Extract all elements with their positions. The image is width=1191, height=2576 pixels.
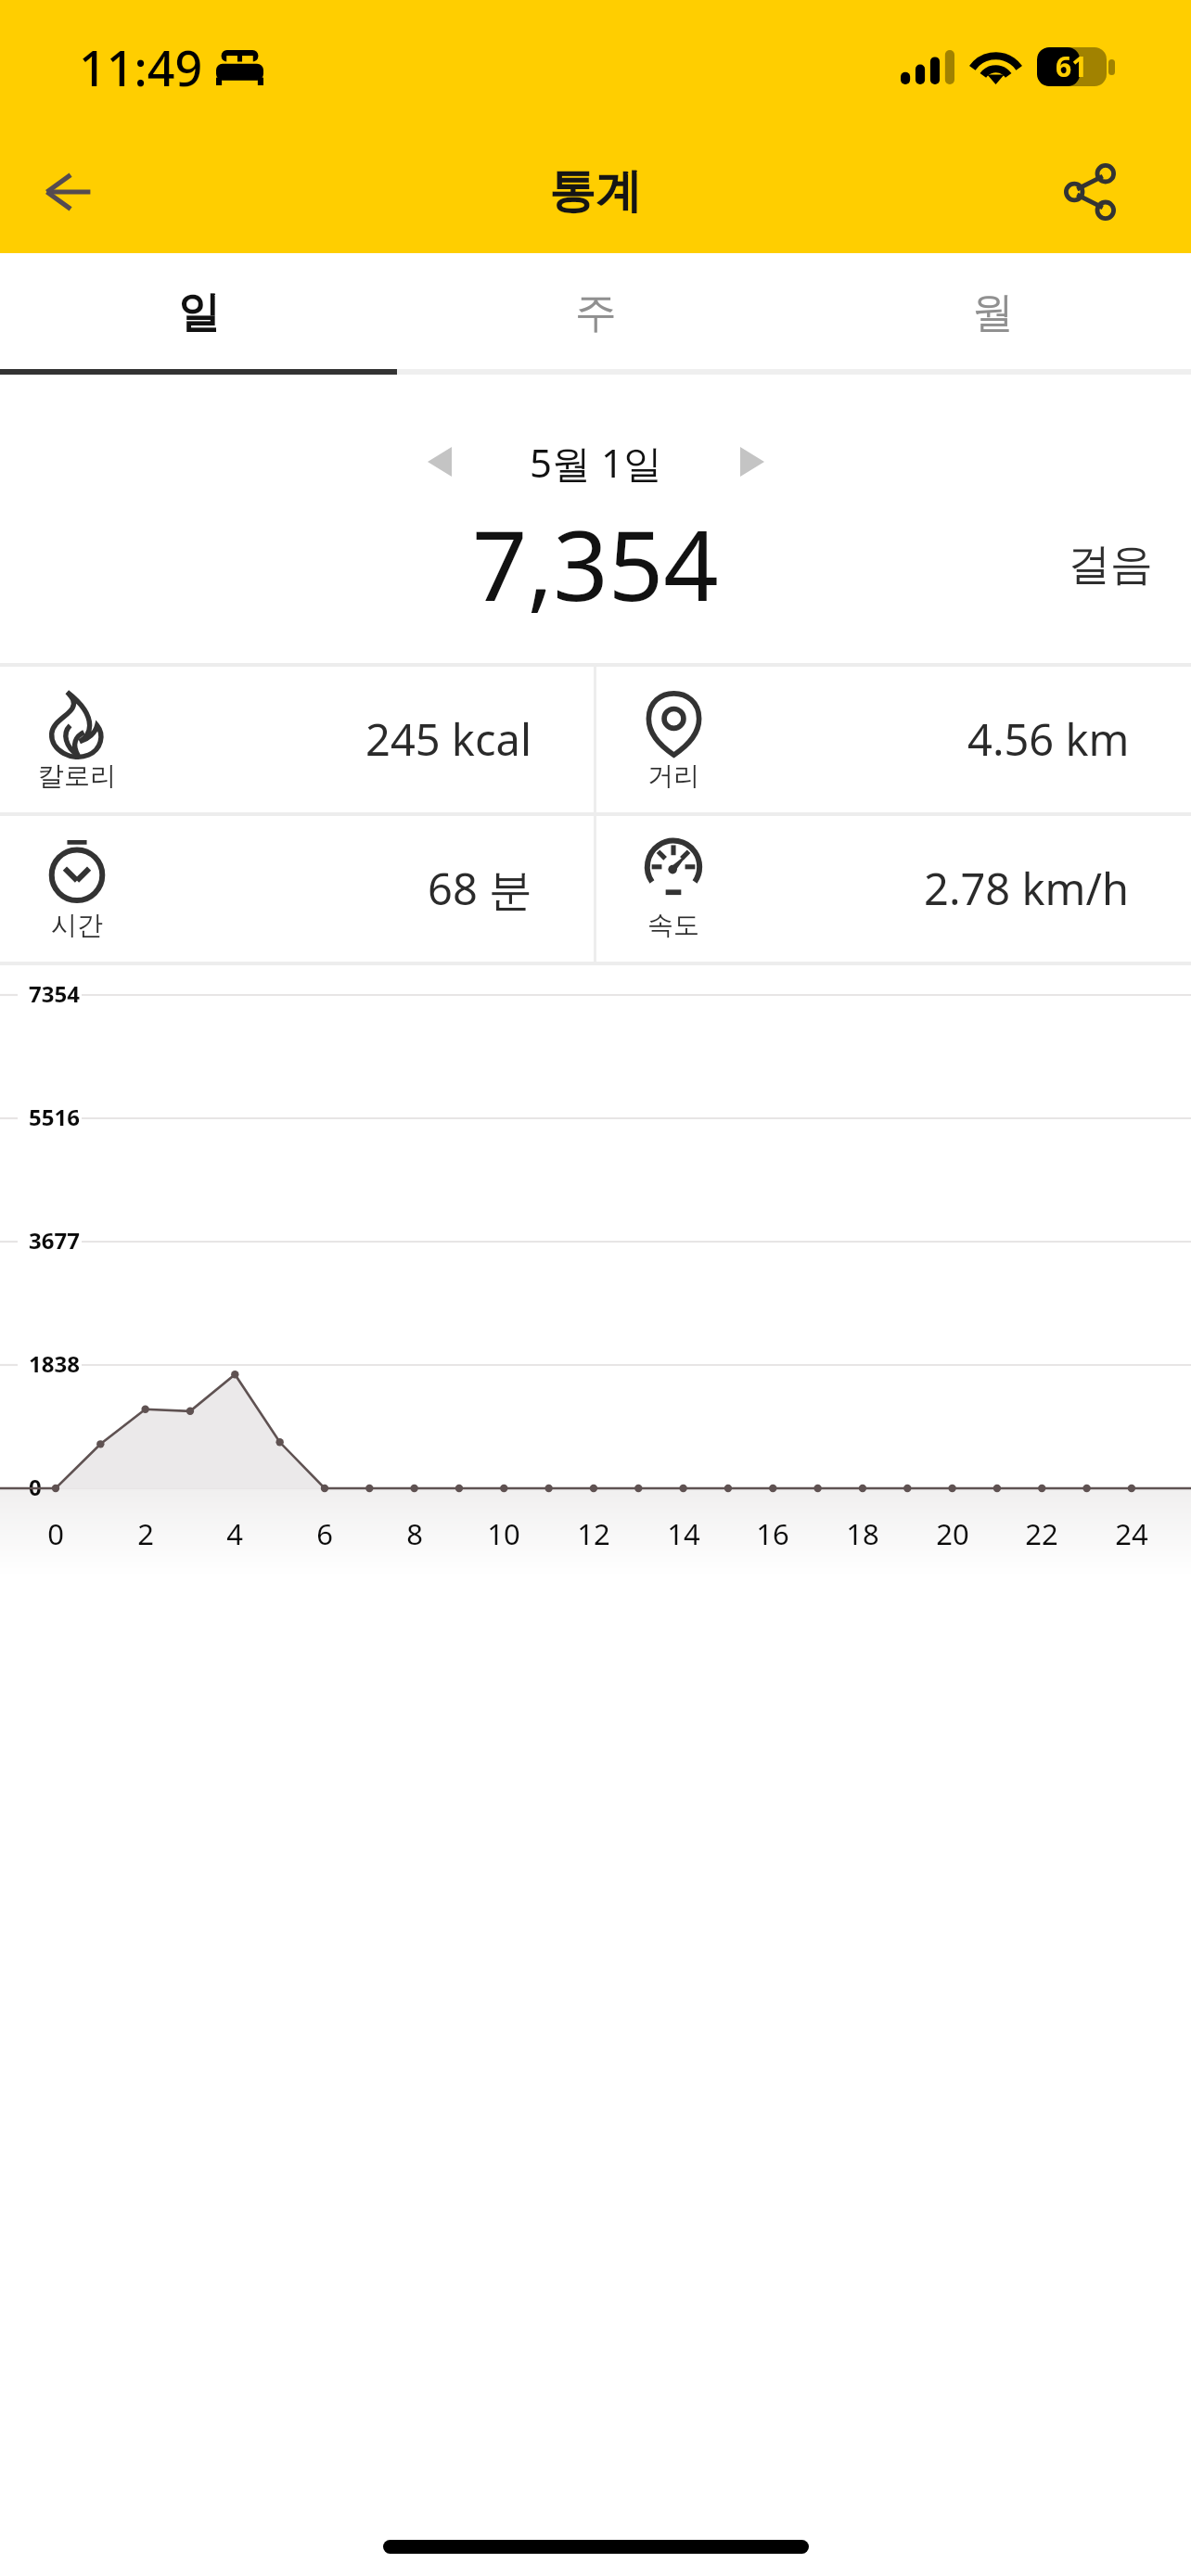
staticText: 4 bbox=[198, 1514, 272, 1553]
staticText: 7354 bbox=[29, 978, 80, 1009]
staticText: 20 bbox=[916, 1514, 990, 1553]
button[interactable]: 월 bbox=[794, 253, 1191, 375]
button[interactable]: Next day bbox=[711, 421, 793, 503]
staticText: 5월 1일 bbox=[530, 436, 662, 489]
button[interactable]: 주 bbox=[397, 253, 794, 375]
staticText: 1838 bbox=[29, 1348, 80, 1379]
staticText: 거리 bbox=[647, 759, 699, 792]
staticText: 11:49 bbox=[79, 34, 203, 100]
staticText: 일 bbox=[178, 287, 220, 339]
staticText: 속도 bbox=[647, 909, 699, 941]
staticText: 2 bbox=[109, 1514, 183, 1553]
staticText: 6 bbox=[288, 1514, 362, 1553]
staticText: 68 분 bbox=[428, 859, 532, 918]
staticText: 10 bbox=[467, 1514, 541, 1553]
staticText: 24 bbox=[1095, 1514, 1169, 1553]
staticText: 5516 bbox=[29, 1102, 80, 1132]
staticText: 시간 bbox=[51, 909, 103, 941]
staticText: 0 bbox=[19, 1514, 93, 1553]
button[interactable]: 칼로리 bbox=[0, 667, 594, 812]
staticText: 주 bbox=[575, 287, 617, 339]
staticText: 14 bbox=[647, 1514, 721, 1553]
staticText: 7,354 bbox=[472, 498, 719, 613]
staticText: 월 bbox=[972, 287, 1014, 339]
staticText: 245 kcal bbox=[365, 709, 532, 769]
staticText: 22 bbox=[1005, 1514, 1079, 1553]
staticText: 통계 bbox=[549, 162, 642, 221]
button[interactable]: Previous day bbox=[399, 421, 480, 503]
staticText: 3677 bbox=[29, 1225, 80, 1256]
button[interactable]: 거리 bbox=[596, 667, 1191, 812]
button[interactable]: Back bbox=[22, 146, 115, 238]
staticText: 걸음 bbox=[1068, 538, 1153, 592]
staticText: 2.78 km/h bbox=[924, 859, 1130, 918]
staticText: 18 bbox=[826, 1514, 900, 1553]
button[interactable]: Share bbox=[1044, 146, 1136, 238]
staticText: 12 bbox=[557, 1514, 631, 1553]
staticText: 61 bbox=[1056, 47, 1088, 85]
staticText: 칼로리 bbox=[38, 759, 116, 792]
staticText: 4.56 km bbox=[967, 709, 1130, 769]
staticText: 8 bbox=[378, 1514, 452, 1553]
staticText: 0 bbox=[29, 1472, 42, 1502]
staticText: 16 bbox=[736, 1514, 810, 1553]
button[interactable]: 시간 bbox=[0, 816, 594, 962]
button[interactable]: 일 bbox=[0, 253, 397, 375]
button[interactable]: 속도 bbox=[596, 816, 1191, 962]
